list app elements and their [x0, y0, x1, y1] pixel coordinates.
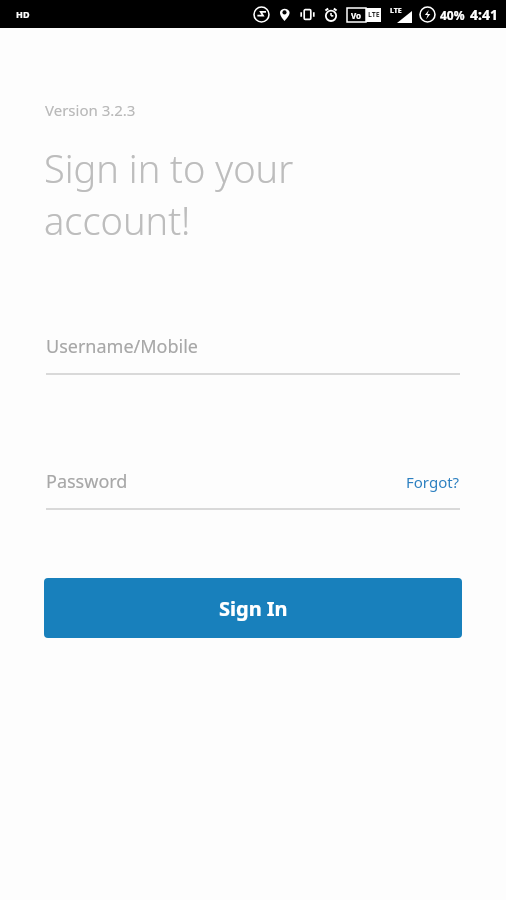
staticText: Vo — [351, 10, 362, 21]
staticText: Password — [46, 469, 128, 494]
button[interactable]: Forgot? — [406, 472, 460, 492]
staticText: Version 3.2.3 — [45, 100, 136, 120]
staticText: 40% — [440, 7, 465, 23]
staticText: Username/Mobile — [46, 334, 198, 359]
staticText: HD — [16, 8, 30, 20]
staticText: 4:41 — [470, 5, 498, 24]
staticText: Forgot? — [406, 472, 460, 492]
staticText: LTE — [390, 6, 402, 16]
staticText: Sign In — [219, 595, 288, 622]
button[interactable]: Sign In — [44, 578, 462, 638]
staticText: Sign in to your account! — [44, 142, 294, 246]
staticText: LTE — [368, 10, 380, 20]
